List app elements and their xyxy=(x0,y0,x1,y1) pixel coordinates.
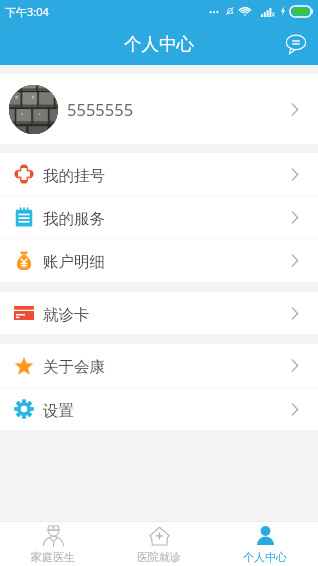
button[interactable]: Messages xyxy=(280,28,312,60)
staticText: 下午3:04 xyxy=(5,4,49,19)
button[interactable]: 我的挂号 xyxy=(0,153,318,195)
button[interactable]: 家庭医生 xyxy=(0,522,106,566)
button[interactable]: 个人中心 xyxy=(212,522,318,566)
staticText: 家庭医生 xyxy=(31,550,75,564)
button[interactable]: 账户明细 xyxy=(0,239,318,282)
staticText: 就诊卡 xyxy=(43,305,90,325)
staticText: 关于会康 xyxy=(43,357,105,377)
staticText: 个人中心 xyxy=(243,550,287,564)
staticText: 账户明细 xyxy=(43,252,105,272)
staticText: 个人中心 xyxy=(124,33,194,55)
button[interactable]: 就诊卡 xyxy=(0,292,318,334)
staticText: 医院就诊 xyxy=(137,550,181,564)
staticText: 我的服务 xyxy=(43,209,105,229)
button[interactable]: 医院就诊 xyxy=(106,522,212,566)
button[interactable]: 5555555 xyxy=(0,74,318,144)
staticText: 我的挂号 xyxy=(43,166,105,186)
button[interactable]: 我的服务 xyxy=(0,196,318,238)
button[interactable]: 关于会康 xyxy=(0,344,318,387)
staticText: 设置 xyxy=(43,401,74,421)
button[interactable]: 设置 xyxy=(0,388,318,430)
staticText: 5555555 xyxy=(67,98,134,120)
